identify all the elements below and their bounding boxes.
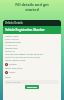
button[interactable]: Owner Name <box>3 34 61 40</box>
staticText: Private <box>9 63 17 66</box>
staticText: Place <box>5 76 11 79</box>
staticText: Rahul Sharma <box>5 38 19 40</box>
button[interactable]: Enter your city <box>5 80 59 84</box>
staticText: Are you the owner of this vehicle ? <box>5 52 44 55</box>
button[interactable]: Private <box>5 63 61 66</box>
staticText: Select Vehicle Type <box>5 59 26 62</box>
staticText: Vehicle Registration Number <box>5 28 45 32</box>
staticText: Registered Date <box>5 41 21 44</box>
staticText: Fill details and get started <box>0 2 64 12</box>
staticText: Select the appropriate option below <box>5 56 41 59</box>
staticText: Select Fuel Type <box>5 67 23 70</box>
button[interactable]: Vehicle Class <box>3 46 61 52</box>
staticText: PROCEED <box>27 86 37 89</box>
staticText: Owner Name <box>5 35 19 38</box>
button[interactable]: Registered Date <box>3 40 61 46</box>
staticText: Enter your city <box>6 81 21 84</box>
button[interactable]: Petrol <box>5 71 61 74</box>
staticText: Vehicle Details <box>5 21 23 25</box>
button[interactable]: PROCEED <box>25 85 39 89</box>
staticText: Vehicle Class <box>5 47 18 50</box>
staticText: 12 Mar 2019 <box>5 44 18 46</box>
staticText: Motor Car <box>5 50 15 52</box>
staticText: Petrol <box>9 71 16 74</box>
